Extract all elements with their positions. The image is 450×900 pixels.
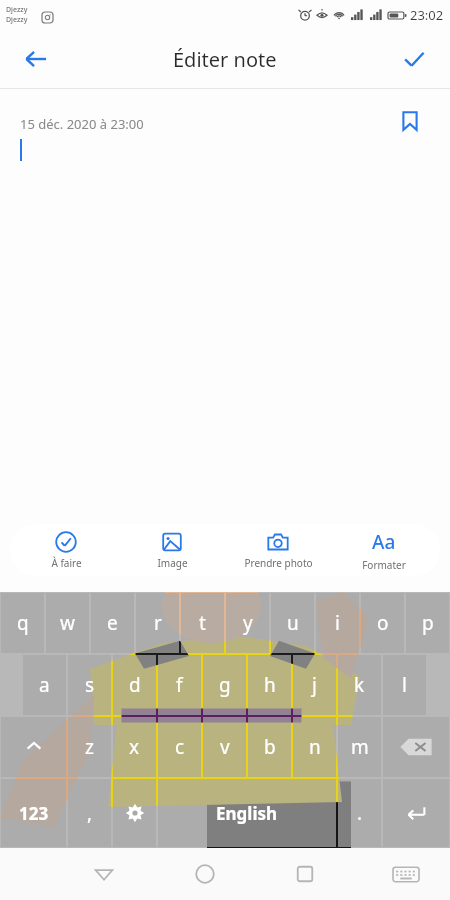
- button[interactable]: w: [46, 593, 89, 653]
- staticText: English: [216, 802, 278, 825]
- button[interactable]: Shift: [1, 717, 66, 777]
- staticText: 123: [19, 802, 49, 825]
- button[interactable]: b: [248, 717, 291, 777]
- button[interactable]: u: [271, 593, 314, 653]
- staticText: b: [264, 734, 276, 760]
- button[interactable]: m: [338, 717, 381, 777]
- staticText: 15 déc. 2020 à 23:00: [20, 115, 144, 133]
- staticText: 23:02: [410, 6, 444, 24]
- staticText: Prendre photo: [244, 556, 313, 570]
- staticText: l: [402, 672, 407, 698]
- button[interactable]: Bookmark: [390, 101, 430, 141]
- button[interactable]: g: [203, 655, 246, 715]
- button[interactable]: t: [181, 593, 224, 653]
- staticText: Djezzy: [6, 15, 28, 25]
- staticText: m: [351, 734, 369, 760]
- button[interactable]: ,: [68, 779, 111, 847]
- button[interactable]: d: [113, 655, 156, 715]
- staticText: Djezzy: [6, 5, 28, 15]
- button[interactable]: Recents: [281, 850, 329, 898]
- staticText: p: [422, 610, 434, 636]
- button[interactable]: Home: [181, 850, 229, 898]
- staticText: a: [39, 672, 50, 698]
- staticText: g: [219, 672, 231, 698]
- button[interactable]: o: [361, 593, 404, 653]
- button[interactable]: À faire: [16, 531, 116, 570]
- button[interactable]: 123: [1, 779, 66, 847]
- staticText: v: [220, 734, 230, 760]
- button[interactable]: e: [91, 593, 134, 653]
- button[interactable]: j: [293, 655, 336, 715]
- staticText: o: [377, 610, 389, 636]
- button[interactable]: c: [158, 717, 201, 777]
- button[interactable]: Image: [122, 531, 222, 570]
- staticText: w: [60, 610, 75, 636]
- staticText: h: [264, 672, 276, 698]
- button[interactable]: s: [68, 655, 111, 715]
- staticText: c: [175, 734, 185, 760]
- staticText: Image: [157, 556, 188, 570]
- staticText: r: [154, 610, 162, 636]
- staticText: Aa: [372, 529, 396, 555]
- button[interactable]: Back: [80, 850, 128, 898]
- button[interactable]: a: [23, 655, 66, 715]
- button[interactable]: k: [338, 655, 381, 715]
- button[interactable]: p: [406, 593, 449, 653]
- button[interactable]: Aa: [334, 529, 434, 572]
- staticText: ,: [87, 800, 93, 826]
- staticText: u: [287, 610, 299, 636]
- staticText: y: [243, 610, 253, 636]
- staticText: f: [176, 672, 183, 698]
- staticText: À faire: [51, 556, 82, 570]
- staticText: d: [129, 672, 141, 698]
- button[interactable]: l: [383, 655, 426, 715]
- button[interactable]: English: [158, 779, 336, 847]
- button[interactable]: .: [338, 779, 381, 847]
- button[interactable]: Back: [14, 37, 58, 81]
- button[interactable]: x: [113, 717, 156, 777]
- staticText: j: [312, 672, 317, 698]
- staticText: i: [335, 610, 340, 636]
- staticText: .: [357, 800, 363, 826]
- staticText: z: [85, 734, 94, 760]
- staticText: q: [17, 610, 29, 636]
- staticText: Éditer note: [173, 46, 277, 73]
- staticText: k: [354, 672, 365, 698]
- button[interactable]: v: [203, 717, 246, 777]
- button[interactable]: y: [226, 593, 269, 653]
- staticText: e: [107, 610, 118, 636]
- button[interactable]: Settings: [113, 779, 156, 847]
- button[interactable]: r: [136, 593, 179, 653]
- staticText: s: [85, 672, 95, 698]
- button[interactable]: n: [293, 717, 336, 777]
- staticText: x: [129, 734, 140, 760]
- button[interactable]: Backspace: [383, 717, 449, 777]
- staticText: n: [309, 734, 321, 760]
- button[interactable]: h: [248, 655, 291, 715]
- button[interactable]: i: [316, 593, 359, 653]
- button[interactable]: q: [1, 593, 44, 653]
- button[interactable]: Save: [392, 37, 436, 81]
- button[interactable]: z: [68, 717, 111, 777]
- button[interactable]: Prendre photo: [228, 531, 328, 570]
- button[interactable]: Switch keyboard: [382, 850, 430, 898]
- staticText: Formater: [362, 558, 406, 572]
- button[interactable]: Enter: [383, 779, 449, 847]
- staticText: t: [199, 610, 206, 636]
- button[interactable]: f: [158, 655, 201, 715]
